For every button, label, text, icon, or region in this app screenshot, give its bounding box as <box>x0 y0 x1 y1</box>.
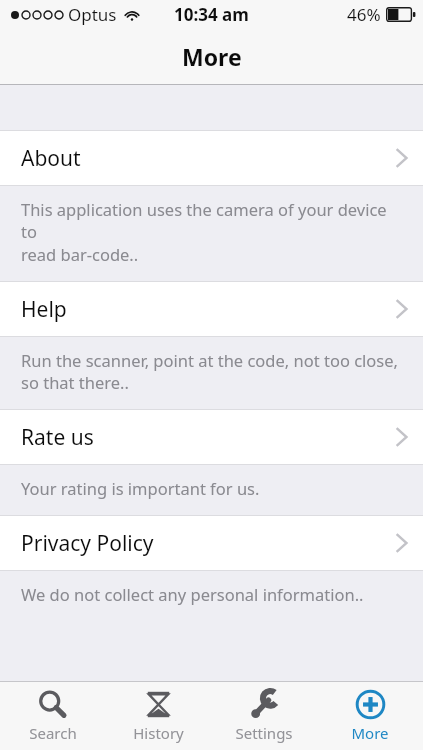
button[interactable]: Settings <box>211 682 317 750</box>
staticText: Help <box>21 295 67 324</box>
staticText: Settings <box>235 723 293 743</box>
staticText: More <box>182 41 242 72</box>
staticText: Run the scanner, point at the code, not … <box>21 349 398 393</box>
staticText: Rate us <box>21 423 94 452</box>
button[interactable]: History <box>105 682 211 750</box>
staticText: 46% <box>347 3 381 26</box>
staticText: Search <box>29 723 77 743</box>
staticText: Optus <box>68 3 117 26</box>
staticText: This application uses the camera of your… <box>21 198 405 265</box>
button[interactable]: Rate us <box>0 410 423 464</box>
button[interactable]: Privacy Policy <box>0 516 423 570</box>
button[interactable]: Help <box>0 282 423 336</box>
staticText: Privacy Policy <box>21 529 154 558</box>
staticText: More <box>351 723 389 743</box>
staticText: Your rating is important for us. <box>21 477 260 499</box>
button[interactable]: About <box>0 131 423 185</box>
button[interactable]: More <box>317 682 423 750</box>
staticText: About <box>21 144 81 173</box>
staticText: 10:34 am <box>174 3 249 26</box>
button[interactable]: Search <box>0 682 105 750</box>
staticText: We do not collect any personal informati… <box>21 583 364 605</box>
staticText: History <box>133 723 184 743</box>
